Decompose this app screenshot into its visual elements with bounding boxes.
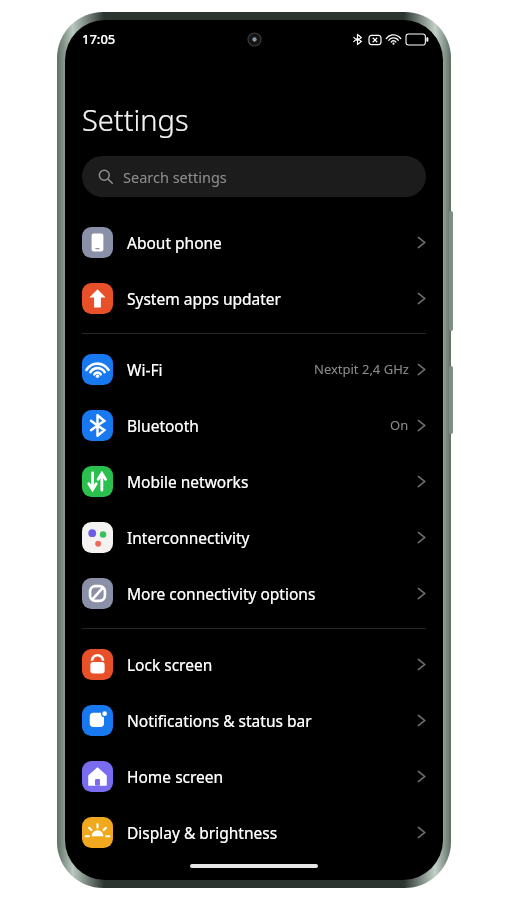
staticText: Home screen (127, 766, 417, 787)
button[interactable]: Mobile networks (65, 453, 443, 509)
staticText: Nextpit 2,4 GHz (314, 360, 409, 378)
button[interactable]: Wi-Fi (65, 341, 443, 397)
button[interactable]: Notifications & status bar (65, 692, 443, 748)
staticText: Search settings (123, 167, 227, 187)
button[interactable]: Lock screen (65, 636, 443, 692)
staticText: System apps updater (127, 288, 417, 309)
staticText: About phone (127, 232, 417, 253)
staticText: Bluetooth (127, 415, 390, 436)
staticText: Display & brightness (127, 822, 417, 843)
button[interactable]: Bluetooth (65, 397, 443, 453)
staticText: Wi-Fi (127, 359, 314, 380)
staticText: Interconnectivity (127, 527, 417, 548)
button[interactable]: More connectivity options (65, 565, 443, 621)
staticText: More connectivity options (127, 583, 417, 604)
button[interactable]: Interconnectivity (65, 509, 443, 565)
staticText: Mobile networks (127, 471, 417, 492)
staticText: Lock screen (127, 654, 417, 675)
button[interactable]: Search settings (82, 156, 426, 197)
staticText: 17:05 (82, 30, 116, 48)
button[interactable]: System apps updater (65, 270, 443, 326)
button[interactable]: About phone (65, 214, 443, 270)
staticText: On (390, 416, 409, 434)
staticText: Settings (82, 100, 189, 139)
button[interactable]: Display & brightness (65, 804, 443, 860)
staticText: Notifications & status bar (127, 710, 417, 731)
button[interactable]: Home screen (65, 748, 443, 804)
